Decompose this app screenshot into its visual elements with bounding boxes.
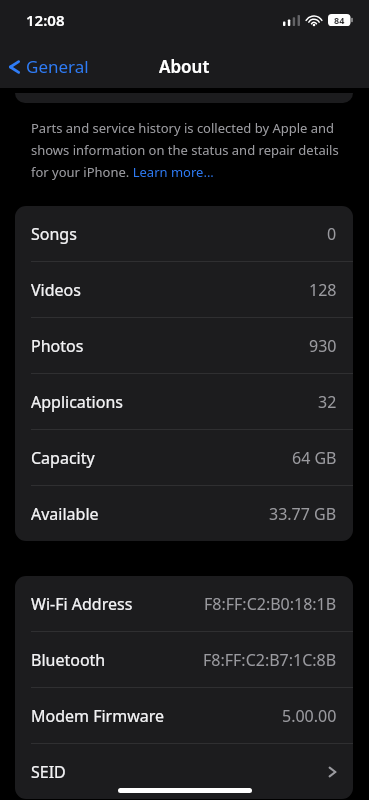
- staticText: Videos: [31, 279, 81, 301]
- staticText: F8:FF:C2:B0:18:1B: [204, 593, 337, 615]
- staticText: 930: [309, 335, 337, 357]
- button[interactable]: Capacity: [15, 430, 353, 485]
- staticText: General: [26, 55, 89, 78]
- button[interactable]: Modem Firmware: [15, 688, 353, 743]
- staticText: 64 GB: [292, 447, 337, 469]
- button[interactable]: Wi-Fi Address: [15, 576, 353, 631]
- staticText: 84: [334, 14, 345, 26]
- staticText: Modem Firmware: [31, 705, 165, 727]
- staticText: Capacity: [31, 447, 95, 469]
- button[interactable]: Songs: [15, 206, 353, 261]
- staticText: Parts and service history is collected b…: [31, 119, 341, 181]
- staticText: 5.00.00: [282, 705, 337, 727]
- staticText: Wi-Fi Address: [31, 593, 133, 615]
- staticText: 12:08: [26, 10, 65, 30]
- button[interactable]: Videos: [15, 262, 353, 317]
- staticText: About: [159, 55, 210, 78]
- staticText: Bluetooth: [31, 649, 106, 671]
- button[interactable]: Photos: [15, 318, 353, 373]
- button[interactable]: Bluetooth: [15, 632, 353, 687]
- other: Open SEID: [328, 764, 337, 780]
- staticText: F8:FF:C2:B7:1C:8B: [203, 649, 337, 671]
- staticText: Applications: [31, 391, 123, 413]
- staticText: Photos: [31, 335, 84, 357]
- staticText: SEID: [31, 761, 66, 783]
- button[interactable]: SEID: [15, 744, 353, 799]
- staticText: Available: [31, 503, 99, 525]
- button[interactable]: Applications: [15, 374, 353, 429]
- staticText: 32: [318, 391, 337, 413]
- button[interactable]: Available: [15, 486, 353, 541]
- staticText: Songs: [31, 223, 77, 245]
- staticText: 128: [309, 279, 337, 301]
- staticText: 33.77 GB: [269, 503, 337, 525]
- button[interactable]: General: [0, 49, 99, 84]
- staticText: 0: [327, 223, 337, 245]
